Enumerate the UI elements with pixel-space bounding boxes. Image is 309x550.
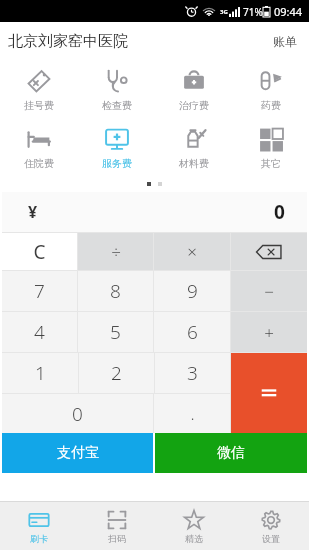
- staticText: 扫码: [108, 533, 126, 544]
- staticText: 药费: [261, 99, 281, 112]
- staticText: 挂号费: [24, 99, 54, 112]
- staticText: 刷卡: [30, 533, 48, 544]
- staticText: 1: [35, 360, 46, 386]
- staticText: ×: [187, 240, 197, 263]
- button[interactable]: 5: [78, 312, 153, 352]
- staticText: 2: [111, 360, 122, 386]
- staticText: 09:44: [274, 4, 303, 19]
- staticText: .: [190, 402, 195, 425]
- staticText: 其它: [261, 157, 281, 170]
- button[interactable]: 8: [78, 271, 153, 311]
- button[interactable]: 刷卡: [0, 502, 78, 550]
- staticText: 材料费: [179, 157, 209, 170]
- staticText: ÷: [111, 240, 121, 263]
- button[interactable]: Equals: [231, 353, 307, 433]
- button[interactable]: Delete: [231, 233, 307, 270]
- staticText: 设置: [262, 533, 280, 544]
- button[interactable]: 精选: [155, 502, 232, 550]
- staticText: 6: [187, 319, 198, 345]
- staticText: 治疗费: [179, 99, 209, 112]
- staticText: 0: [274, 199, 285, 225]
- button[interactable]: 挂号费: [0, 60, 78, 118]
- staticText: ¥: [28, 201, 38, 223]
- staticText: 精选: [185, 533, 203, 544]
- staticText: −: [264, 280, 274, 303]
- button[interactable]: 微信: [155, 433, 307, 473]
- button[interactable]: 检查费: [78, 60, 155, 118]
- button[interactable]: 0: [2, 394, 153, 433]
- button[interactable]: 设置: [232, 502, 309, 550]
- button[interactable]: 支付宝: [2, 433, 153, 473]
- button[interactable]: 服务费: [78, 118, 155, 176]
- button[interactable]: ×: [154, 233, 230, 270]
- button[interactable]: 账单: [261, 26, 309, 57]
- button[interactable]: 6: [154, 312, 230, 352]
- button[interactable]: C: [2, 233, 77, 270]
- button[interactable]: 材料费: [155, 118, 232, 176]
- staticText: 账单: [273, 34, 297, 49]
- staticText: 支付宝: [57, 444, 99, 462]
- staticText: 5: [110, 319, 121, 345]
- staticText: 9: [187, 278, 198, 304]
- staticText: 71%: [243, 5, 263, 19]
- staticText: C: [33, 239, 46, 265]
- button[interactable]: 治疗费: [155, 60, 232, 118]
- button[interactable]: 4: [2, 312, 77, 352]
- button[interactable]: 9: [154, 271, 230, 311]
- staticText: 住院费: [24, 157, 54, 170]
- staticText: 3: [187, 360, 198, 386]
- button[interactable]: 2: [79, 353, 154, 393]
- button[interactable]: +: [231, 312, 307, 352]
- staticText: 北京刘家窑中医院: [8, 32, 128, 51]
- staticText: 7: [34, 278, 45, 304]
- staticText: 0: [72, 401, 83, 427]
- button[interactable]: .: [154, 394, 230, 433]
- staticText: 8: [110, 278, 121, 304]
- staticText: 微信: [217, 444, 245, 462]
- button[interactable]: 药费: [232, 60, 309, 118]
- button[interactable]: 其它: [232, 118, 309, 176]
- button[interactable]: 7: [2, 271, 77, 311]
- staticText: 4: [34, 319, 45, 345]
- staticText: 3G: [220, 8, 228, 16]
- button[interactable]: 扫码: [78, 502, 155, 550]
- button[interactable]: 1: [2, 353, 78, 393]
- button[interactable]: −: [231, 271, 307, 311]
- staticText: 服务费: [102, 157, 132, 170]
- button[interactable]: ÷: [78, 233, 153, 270]
- button[interactable]: 住院费: [0, 118, 78, 176]
- staticText: +: [264, 321, 274, 344]
- staticText: 检查费: [102, 99, 132, 112]
- button[interactable]: 3: [155, 353, 230, 393]
